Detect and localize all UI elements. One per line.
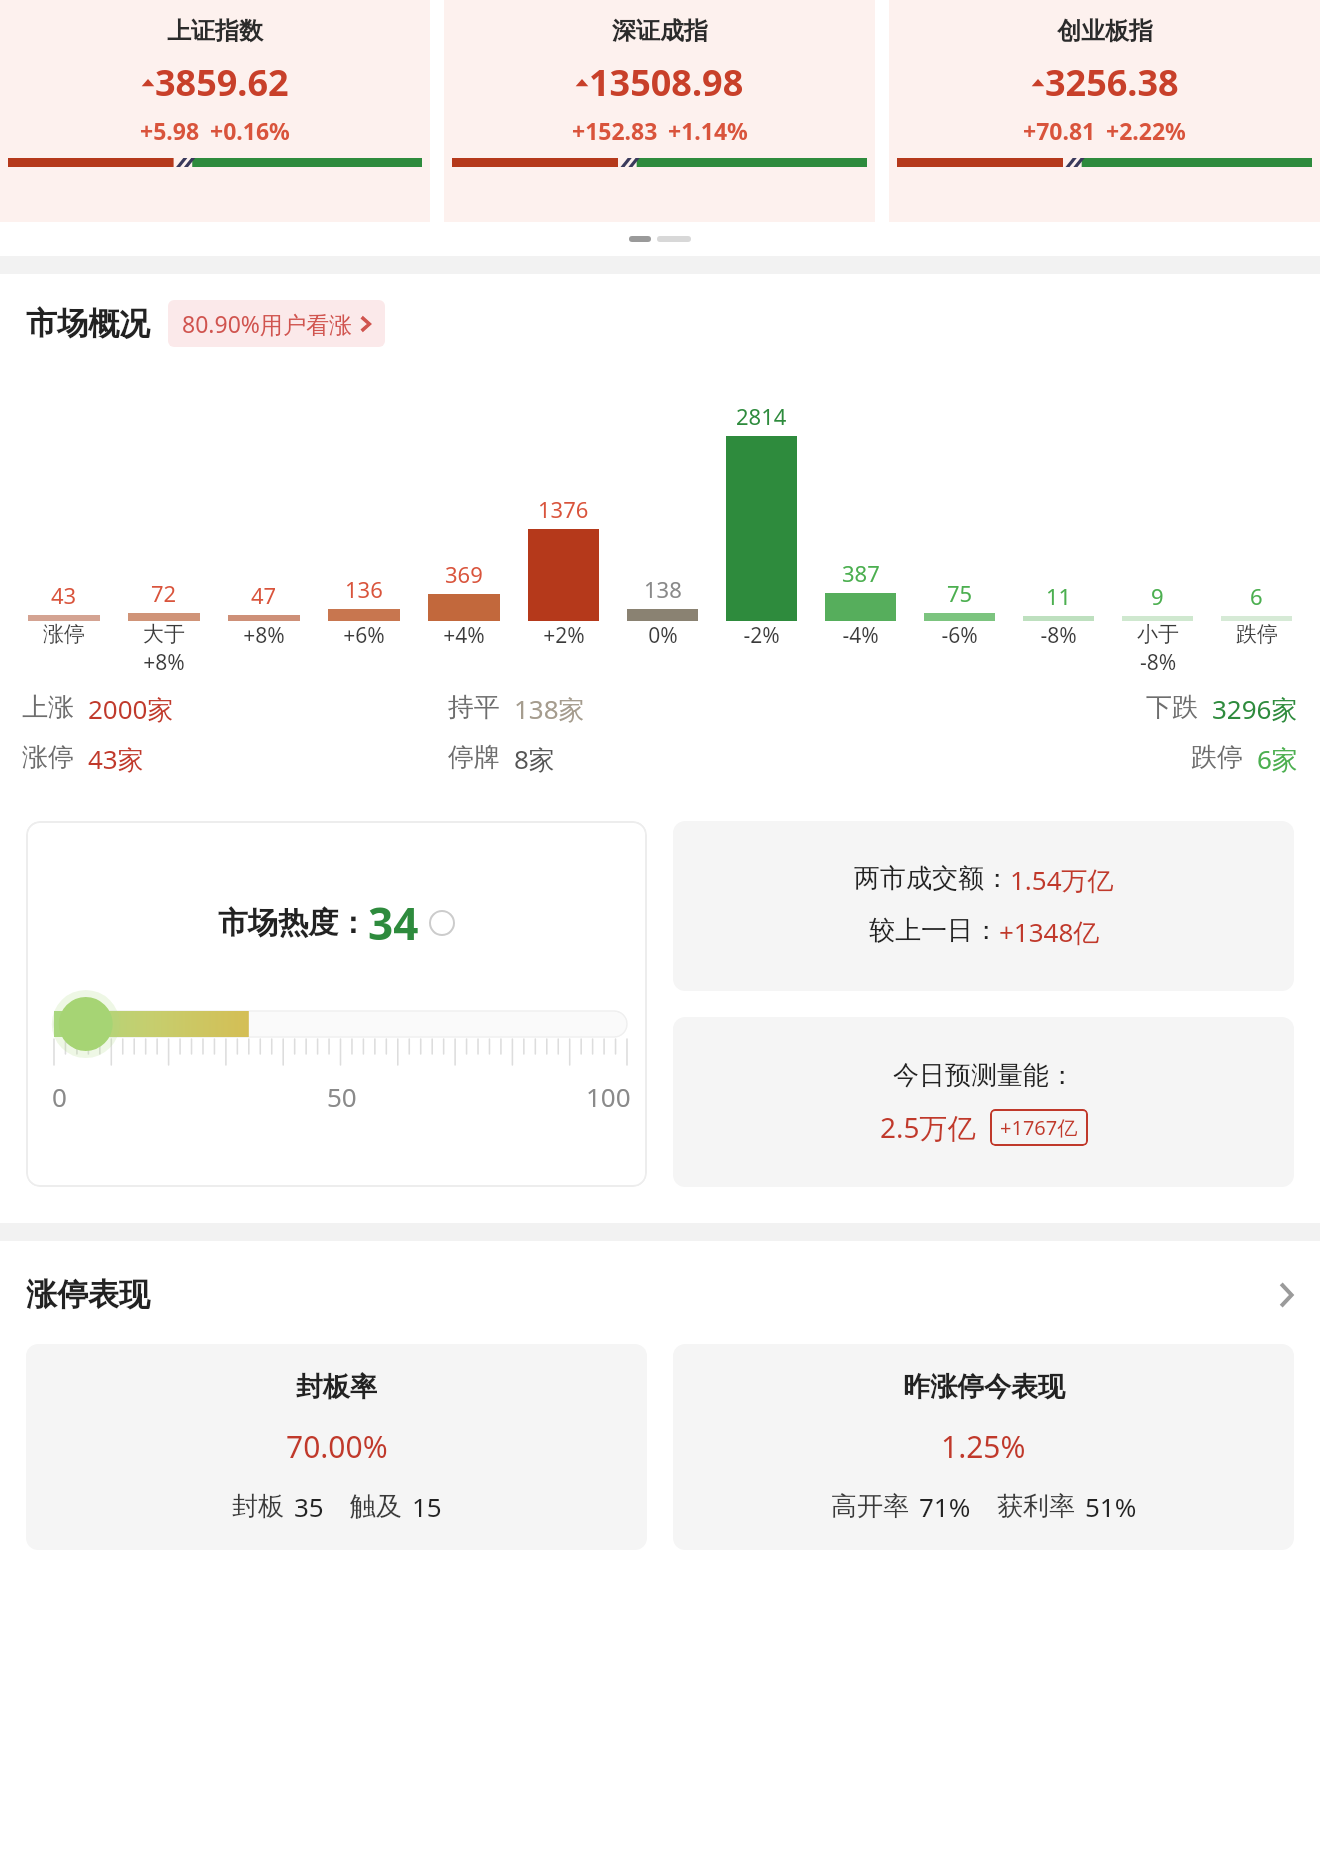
- staticText: 387: [842, 558, 880, 588]
- staticText: +1348亿: [999, 914, 1100, 950]
- staticText: 34: [368, 893, 419, 953]
- button[interactable]: 涨停表现: [0, 1275, 1320, 1314]
- staticText: 43家: [88, 741, 144, 777]
- staticText: 35: [294, 1489, 324, 1524]
- staticText: 43: [51, 580, 77, 610]
- staticText: 6家: [1257, 741, 1298, 777]
- button[interactable]: 两市成交额：: [673, 821, 1294, 991]
- staticText: 3859.62: [155, 58, 289, 107]
- staticText: 触及: [350, 1490, 402, 1523]
- staticText: 创业板指: [1057, 16, 1153, 46]
- staticText: 2000家: [88, 691, 174, 727]
- staticText: 封板率: [296, 1370, 377, 1404]
- staticText: +5.98: [140, 115, 200, 146]
- staticText: 市场热度：: [218, 904, 368, 942]
- button[interactable]: 封板率: [26, 1344, 647, 1550]
- staticText: 72: [151, 578, 177, 608]
- other: 查看涨停表现: [1278, 1281, 1294, 1309]
- staticText: 71%: [919, 1489, 971, 1524]
- button[interactable]: 上证指数: [0, 0, 430, 222]
- staticText: +70.81: [1023, 115, 1096, 146]
- staticText: 深证成指: [612, 16, 708, 46]
- button[interactable]: 今日预测量能：: [673, 1017, 1294, 1187]
- staticText: +6%: [343, 621, 385, 650]
- staticText: -2%: [743, 621, 780, 650]
- staticText: +4%: [443, 621, 485, 650]
- staticText: 369: [445, 559, 483, 589]
- staticText: 涨停表现: [26, 1275, 150, 1314]
- staticText: 跌停: [1191, 741, 1243, 774]
- staticText: 51%: [1085, 1489, 1137, 1524]
- staticText: 75: [947, 578, 973, 608]
- button[interactable]: 创业板指: [889, 0, 1320, 222]
- staticText: 1.54万亿: [1010, 862, 1114, 898]
- staticText: 下跌: [1146, 691, 1198, 724]
- staticText: 138家: [514, 691, 585, 727]
- staticText: -8%: [1040, 621, 1077, 650]
- staticText: 9: [1151, 581, 1164, 611]
- staticText: +8%: [243, 621, 285, 650]
- staticText: 0: [52, 1079, 67, 1114]
- button[interactable]: 80.90%用户看涨: [168, 300, 385, 347]
- staticText: 停牌: [448, 741, 500, 774]
- staticText: 1376: [538, 494, 589, 524]
- staticText: 11: [1046, 581, 1072, 611]
- staticText: 市场概况: [26, 304, 150, 343]
- staticText: 8家: [514, 741, 555, 777]
- staticText: 持平: [448, 691, 500, 724]
- staticText: 6: [1250, 581, 1263, 611]
- staticText: 50: [327, 1079, 357, 1114]
- staticText: 80.90%用户看涨: [182, 308, 352, 339]
- staticText: 大于 +8%: [143, 621, 185, 677]
- staticText: +0.16%: [210, 115, 290, 146]
- button[interactable]: 深证成指: [444, 0, 875, 222]
- staticText: 昨涨停今表现: [903, 1370, 1065, 1404]
- staticText: -6%: [941, 621, 978, 650]
- staticText: +1767亿: [1000, 1114, 1078, 1141]
- staticText: 0%: [648, 621, 678, 650]
- staticText: 2814: [736, 401, 787, 431]
- staticText: +2%: [543, 621, 585, 650]
- staticText: 100: [586, 1079, 631, 1114]
- staticText: 跌停: [1236, 621, 1278, 647]
- staticText: 上涨: [22, 691, 74, 724]
- button[interactable]: 昨涨停今表现: [673, 1344, 1294, 1550]
- staticText: 47: [251, 580, 277, 610]
- staticText: 高开率: [831, 1490, 909, 1523]
- staticText: 两市成交额：: [854, 862, 1010, 895]
- staticText: 136: [345, 574, 383, 604]
- staticText: 138: [644, 574, 682, 604]
- staticText: 今日预测量能：: [893, 1059, 1075, 1092]
- staticText: -4%: [842, 621, 879, 650]
- staticText: +2.22%: [1106, 115, 1186, 146]
- staticText: 小于 -8%: [1137, 621, 1179, 677]
- staticText: 3256.38: [1045, 58, 1179, 107]
- button[interactable]: 市场热度：: [26, 821, 647, 1187]
- staticText: +1.14%: [668, 115, 748, 146]
- staticText: 1.25%: [941, 1426, 1026, 1467]
- staticText: 涨停: [43, 621, 85, 647]
- staticText: 13508.98: [589, 58, 744, 107]
- staticText: 涨停: [22, 741, 74, 774]
- staticText: 15: [412, 1489, 442, 1524]
- staticText: 获利率: [997, 1490, 1075, 1523]
- staticText: 封板: [232, 1490, 284, 1523]
- staticText: +152.83: [572, 115, 658, 146]
- staticText: 70.00%: [286, 1426, 388, 1467]
- staticText: 3296家: [1212, 691, 1298, 727]
- staticText: 2.5万亿: [880, 1108, 976, 1146]
- staticText: 上证指数: [167, 16, 263, 46]
- staticText: 较上一日：: [869, 914, 999, 947]
